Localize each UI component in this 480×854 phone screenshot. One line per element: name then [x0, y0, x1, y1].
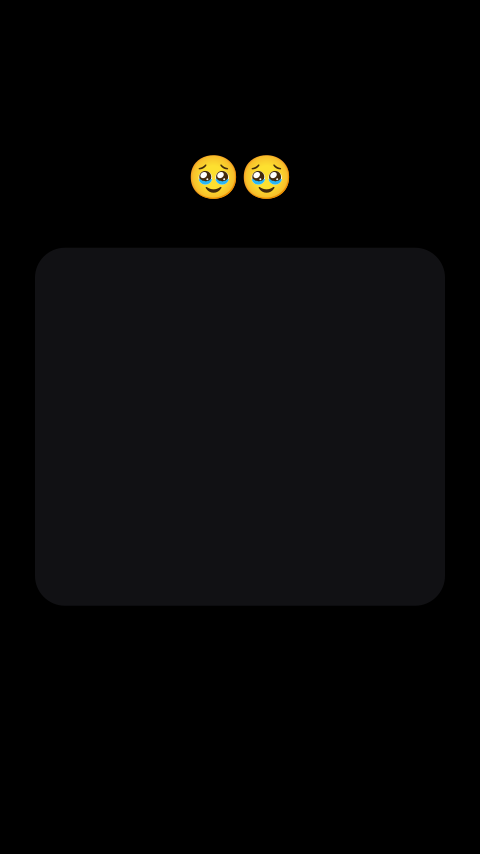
staticText: 🥹🥹	[187, 153, 293, 202]
